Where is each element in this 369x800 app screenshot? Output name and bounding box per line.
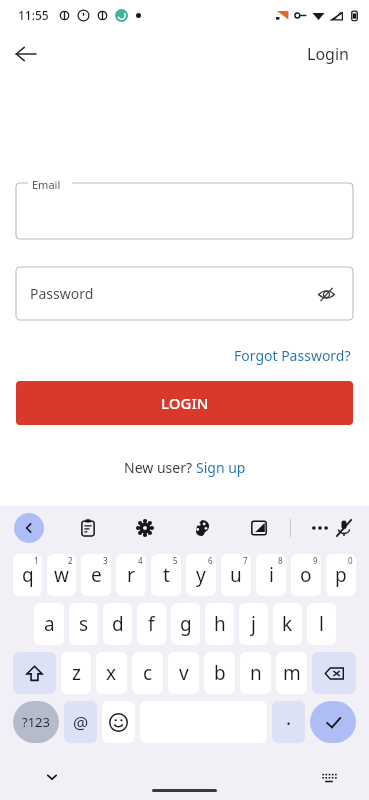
- staticText: @: [73, 711, 89, 734]
- button[interactable]: p: [326, 554, 356, 596]
- button[interactable]: e: [81, 554, 111, 596]
- button[interactable]: a: [34, 603, 64, 645]
- staticText: 6: [208, 555, 213, 566]
- staticText: h: [214, 611, 226, 637]
- button[interactable]: n: [240, 652, 271, 694]
- button[interactable]: Settings: [132, 515, 158, 541]
- button[interactable]: [16, 183, 353, 239]
- button[interactable]: Sign up: [196, 458, 246, 477]
- staticText: .: [286, 705, 292, 731]
- button[interactable]: Clipboard: [75, 515, 101, 541]
- button[interactable]: Resize: [246, 515, 272, 541]
- staticText: 4: [138, 555, 143, 566]
- button[interactable]: Emoji: [102, 701, 135, 743]
- staticText: 5: [173, 555, 178, 566]
- staticText: m: [283, 660, 301, 686]
- staticText: Forgot Password?: [234, 346, 351, 365]
- staticText: ?123: [22, 713, 50, 731]
- staticText: s: [79, 611, 89, 637]
- button[interactable]: f: [137, 603, 166, 645]
- staticText: Email: [32, 177, 61, 192]
- staticText: d: [112, 611, 124, 637]
- button[interactable]: h: [205, 603, 234, 645]
- staticText: o: [300, 562, 312, 588]
- button[interactable]: Change keyboard: [313, 761, 345, 793]
- staticText: 9: [313, 555, 318, 566]
- button[interactable]: LOGIN: [16, 381, 353, 425]
- button[interactable]: g: [171, 603, 200, 645]
- staticText: z: [72, 660, 81, 686]
- staticText: 11:55: [18, 7, 49, 23]
- staticText: b: [214, 660, 226, 686]
- staticText: 2: [68, 555, 73, 566]
- button[interactable]: r: [116, 554, 146, 596]
- button[interactable]: More: [307, 515, 333, 541]
- staticText: x: [106, 660, 117, 686]
- button[interactable]: m: [276, 652, 307, 694]
- button[interactable]: [16, 267, 353, 320]
- button[interactable]: Forgot Password?: [232, 344, 353, 367]
- button[interactable]: Done: [310, 701, 356, 743]
- staticText: c: [143, 660, 153, 686]
- staticText: LOGIN: [161, 393, 209, 413]
- button[interactable]: y: [186, 554, 216, 596]
- button[interactable]: c: [132, 652, 163, 694]
- staticText: 0: [348, 555, 353, 566]
- staticText: f: [148, 611, 155, 637]
- button[interactable]: t: [151, 554, 181, 596]
- button[interactable]: b: [204, 652, 235, 694]
- staticText: t: [163, 562, 170, 588]
- staticText: 1: [34, 555, 39, 566]
- staticText: n: [250, 660, 262, 686]
- staticText: Login: [307, 43, 349, 65]
- button[interactable]: l: [307, 603, 336, 645]
- staticText: e: [91, 562, 102, 588]
- button[interactable]: ?123: [13, 701, 59, 743]
- staticText: q: [22, 562, 34, 588]
- button[interactable]: z: [61, 652, 91, 694]
- button[interactable]: Shift: [13, 652, 56, 694]
- staticText: a: [44, 611, 55, 637]
- button[interactable]: x: [96, 652, 127, 694]
- button[interactable]: u: [221, 554, 251, 596]
- staticText: r: [127, 562, 135, 588]
- button[interactable]: i: [256, 554, 286, 596]
- button[interactable]: Back: [6, 34, 46, 74]
- staticText: 7: [243, 555, 248, 566]
- staticText: 3: [103, 555, 108, 566]
- button[interactable]: o: [291, 554, 321, 596]
- button[interactable]: Period: [272, 701, 305, 743]
- button[interactable]: q: [13, 554, 42, 596]
- staticText: New user?: [124, 458, 196, 477]
- staticText: i: [269, 562, 274, 588]
- staticText: p: [335, 562, 347, 588]
- button[interactable]: Backspace: [312, 652, 356, 694]
- staticText: k: [282, 611, 293, 637]
- button[interactable]: w: [47, 554, 76, 596]
- button[interactable]: At sign: [64, 701, 97, 743]
- button[interactable]: s: [69, 603, 98, 645]
- staticText: Sign up: [196, 458, 246, 477]
- staticText: w: [54, 562, 69, 588]
- staticText: j: [251, 611, 256, 637]
- button[interactable]: Previous: [14, 513, 44, 543]
- button[interactable]: d: [103, 603, 132, 645]
- button[interactable]: v: [168, 652, 199, 694]
- staticText: v: [179, 660, 189, 686]
- button[interactable]: Microphone off: [333, 515, 355, 541]
- staticText: g: [180, 611, 192, 637]
- staticText: u: [230, 562, 242, 588]
- button[interactable]: Theme: [189, 515, 215, 541]
- button[interactable]: j: [239, 603, 268, 645]
- staticText: l: [319, 611, 324, 637]
- staticText: y: [196, 562, 206, 588]
- button[interactable]: Hide keyboard: [36, 761, 68, 793]
- staticText: 8: [278, 555, 283, 566]
- button[interactable]: Show password: [309, 277, 343, 311]
- staticText: Password: [30, 284, 94, 303]
- button[interactable]: k: [273, 603, 302, 645]
